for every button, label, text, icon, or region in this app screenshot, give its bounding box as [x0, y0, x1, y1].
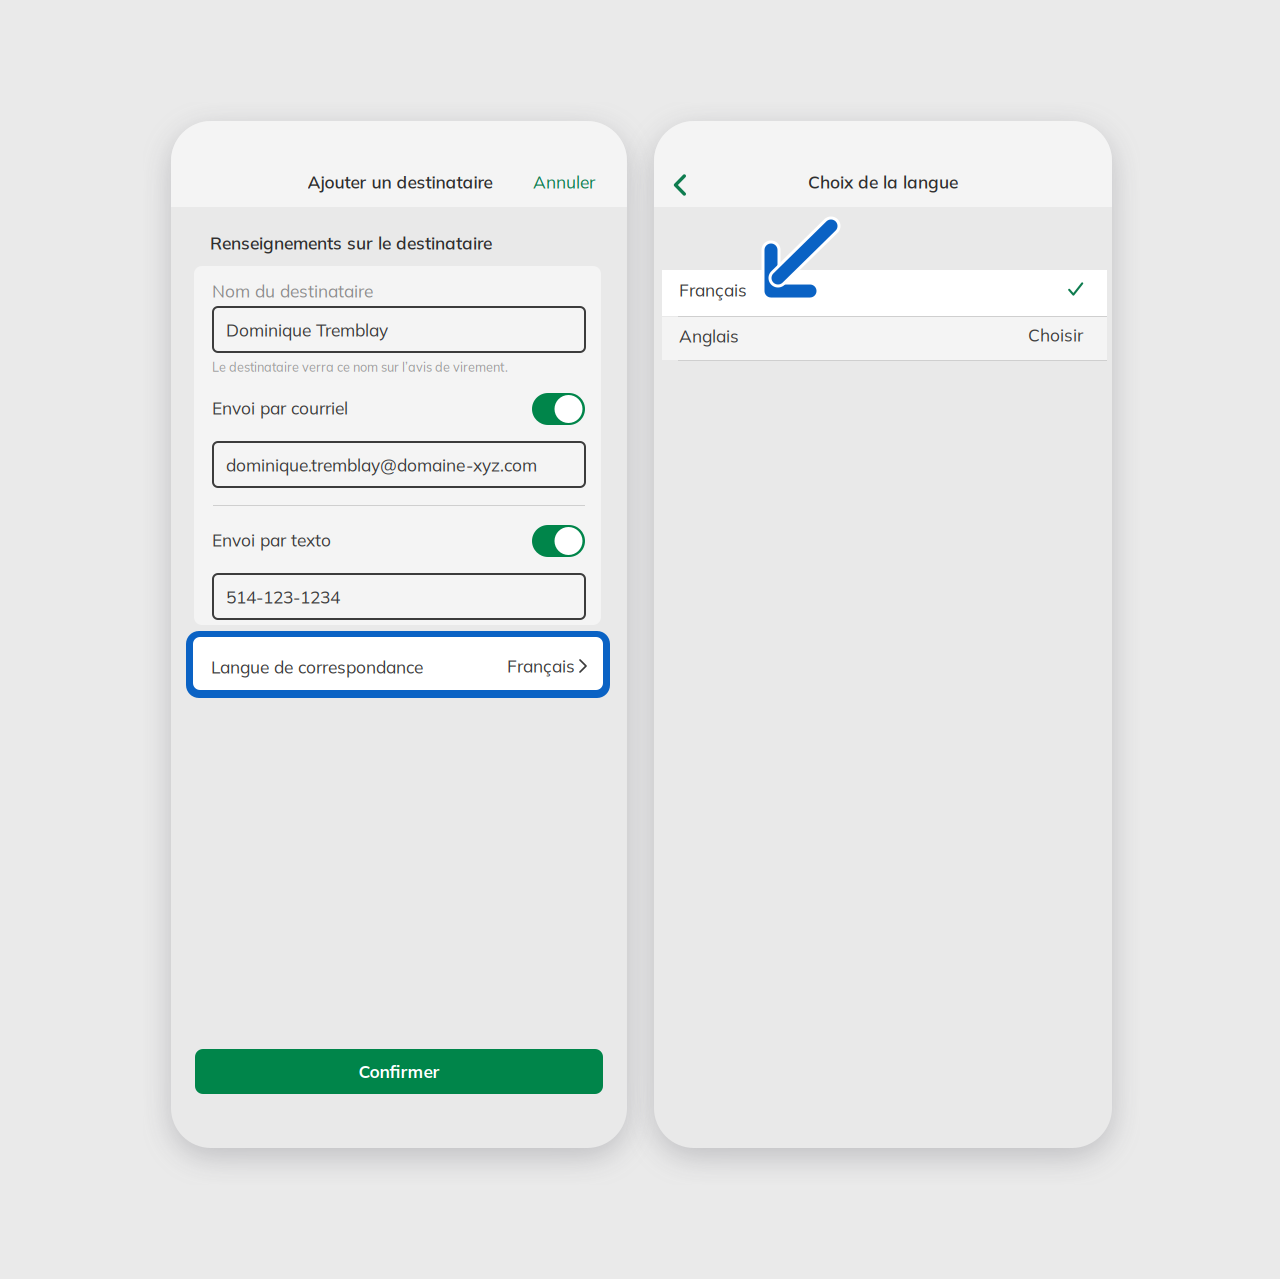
staticText: Nom du destinataire: [212, 280, 373, 302]
button[interactable]: Annuler: [495, 165, 595, 199]
staticText: Choix de la langue: [808, 171, 958, 193]
staticText: Anglais: [679, 325, 739, 347]
staticText: Ajouter un destinataire: [307, 171, 492, 193]
staticText: Français: [507, 655, 575, 677]
button[interactable]: Langue de correspondance: [186, 631, 610, 698]
staticText: dominique.tremblay@domaine-xyz.com: [226, 454, 537, 476]
staticText: Le destinataire verra ce nom sur l’avis …: [212, 359, 508, 375]
staticText: Confirmer: [358, 1061, 439, 1082]
staticText: 514-123-1234: [226, 586, 340, 608]
button[interactable]: Activé: [532, 393, 585, 425]
button[interactable]: Anglais: [662, 317, 1107, 360]
button[interactable]: Confirmer: [195, 1049, 603, 1094]
staticText: Choisir: [1028, 324, 1083, 346]
button[interactable]: Français: [662, 270, 1107, 316]
staticText: Envoi par texto: [212, 529, 331, 551]
button[interactable]: Retour: [661, 166, 699, 204]
button[interactable]: Activé: [532, 525, 585, 557]
staticText: Annuler: [533, 171, 595, 193]
staticText: Langue de correspondance: [211, 656, 423, 678]
staticText: Français: [679, 279, 747, 301]
staticText: Renseignements sur le destinataire: [210, 232, 492, 254]
staticText: Dominique Tremblay: [226, 319, 388, 341]
staticText: Envoi par courriel: [212, 397, 348, 419]
